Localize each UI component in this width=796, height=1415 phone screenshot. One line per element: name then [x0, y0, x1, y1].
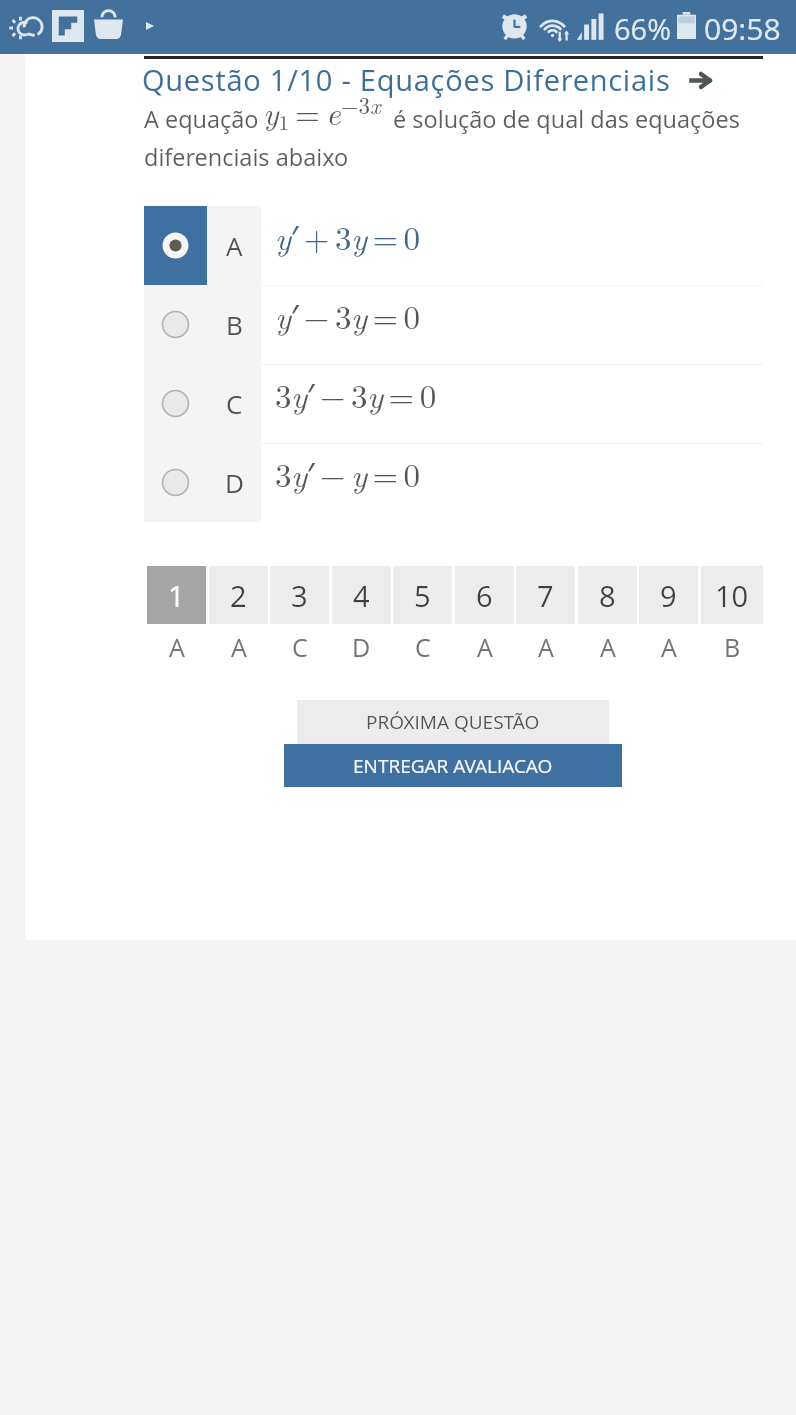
button[interactable]: B [144, 285, 763, 364]
staticText: 10 [715, 576, 749, 615]
button[interactable]: 7 [516, 566, 575, 624]
staticText: é solução de qual das equações [393, 103, 740, 135]
staticText: Questão 1/10 - Equações Diferenciais [142, 60, 671, 99]
staticText: y′ − 3y = 0 [275, 292, 420, 339]
staticText: C [226, 386, 243, 421]
staticText: B [724, 630, 741, 658]
staticText: A [538, 630, 554, 658]
staticText: 9 [660, 576, 677, 615]
button[interactable]: A [144, 206, 763, 285]
button[interactable]: D [144, 443, 763, 522]
staticText: ENTREGAR AVALIACAO [353, 753, 553, 779]
staticText: D [352, 630, 371, 658]
staticText: A [226, 228, 243, 263]
staticText: 4 [353, 576, 370, 615]
staticText: y′ + 3y = 0 [275, 213, 420, 260]
button[interactable]: 6 [455, 566, 514, 624]
button[interactable]: 1 [147, 566, 206, 624]
staticText: A [169, 630, 185, 658]
staticText: 1 [168, 576, 185, 615]
staticText: 66% [614, 9, 672, 48]
staticText: B [226, 307, 243, 342]
staticText: 7 [537, 576, 554, 615]
button[interactable]: 8 [578, 566, 637, 624]
staticText: A [600, 630, 616, 658]
button[interactable]: C [144, 364, 763, 443]
staticText: A [477, 630, 493, 658]
staticText: PRÓXIMA QUESTÃO [366, 709, 540, 735]
button[interactable]: 9 [639, 566, 698, 624]
button[interactable]: 10 [701, 566, 763, 624]
staticText: D [225, 465, 244, 500]
staticText: 5 [414, 576, 431, 615]
staticText: A equação [144, 103, 259, 135]
staticText: 3 [291, 576, 308, 615]
staticText: 2 [230, 576, 247, 615]
staticText: A [661, 630, 677, 658]
staticText: 3y′ − y = 0 [275, 450, 420, 497]
button[interactable]: 5 [393, 566, 452, 624]
button[interactable]: 2 [209, 566, 268, 624]
button[interactable]: 4 [332, 566, 391, 624]
staticText: diferenciais abaixo [144, 141, 349, 173]
button[interactable]: PRÓXIMA QUESTÃO [297, 700, 609, 744]
staticText: 3y′ − 3y = 0 [275, 371, 436, 418]
staticText: y1 = e−3x [263, 88, 381, 136]
staticText: C [415, 630, 431, 658]
staticText: 09:58 [704, 8, 781, 49]
staticText: 6 [476, 576, 493, 615]
staticText: A [231, 630, 247, 658]
button[interactable]: 3 [270, 566, 329, 624]
staticText: 8 [599, 576, 616, 615]
staticText: C [292, 630, 308, 658]
button[interactable]: Próxima questão [688, 67, 713, 92]
button[interactable]: ENTREGAR AVALIACAO [284, 744, 622, 787]
